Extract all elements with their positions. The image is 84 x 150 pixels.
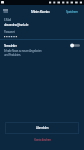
button[interactable]: Back: [0, 6, 11, 17]
staticText: Speichern: [66, 10, 78, 14]
button[interactable]: Abmelden: [5, 122, 79, 134]
staticText: Erhalte News zu neuen Angeboten und Prod…: [4, 49, 42, 57]
staticText: Konto löschen: [34, 138, 51, 142]
button[interactable]: Speichern: [60, 6, 84, 18]
staticText: alexander.s@web.de: [4, 23, 29, 27]
staticText: Newsletter: [4, 44, 17, 48]
staticText: Abmelden: [36, 126, 49, 130]
staticText: Mein Konto: [31, 9, 50, 14]
button[interactable]: Konto löschen: [0, 136, 84, 143]
button[interactable]: Newsletter: [0, 41, 84, 50]
staticText: Passwort: [4, 30, 15, 34]
staticText: E-Mail: [4, 18, 11, 22]
